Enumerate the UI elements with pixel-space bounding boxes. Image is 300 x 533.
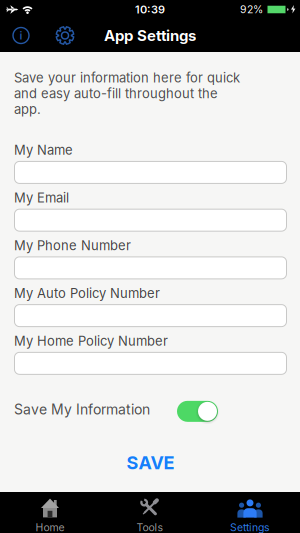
staticText: Home bbox=[35, 521, 64, 533]
staticText: 92% bbox=[240, 3, 263, 16]
textField[interactable] bbox=[20, 355, 287, 371]
textField[interactable] bbox=[20, 308, 287, 323]
staticText: i bbox=[19, 29, 22, 42]
staticText: Save My Information bbox=[14, 401, 150, 418]
staticText: My Home Policy Number bbox=[14, 333, 168, 349]
button[interactable]: Settings bbox=[200, 492, 300, 533]
staticText: My Auto Policy Number bbox=[14, 285, 160, 301]
staticText: My Email bbox=[14, 190, 69, 206]
staticText: Save your information here for quick and… bbox=[14, 70, 240, 117]
button[interactable]: Info bbox=[0, 27, 29, 43]
button[interactable]: Tools bbox=[100, 492, 200, 533]
button[interactable]: Settings bbox=[29, 25, 75, 45]
staticText: Tools bbox=[136, 521, 163, 533]
staticText: My Phone Number bbox=[14, 238, 131, 253]
staticText: App Settings bbox=[104, 26, 196, 44]
staticText: My Name bbox=[14, 142, 73, 158]
button[interactable]: SAVE bbox=[126, 452, 174, 474]
textField[interactable] bbox=[20, 260, 287, 276]
staticText: SAVE bbox=[126, 452, 174, 474]
textField[interactable] bbox=[20, 165, 287, 180]
staticText: 10:39 bbox=[135, 3, 165, 16]
button[interactable]: Home bbox=[0, 492, 100, 533]
staticText: Settings bbox=[230, 521, 270, 533]
button[interactable]: Save My Information bbox=[177, 401, 218, 422]
textField[interactable] bbox=[20, 212, 287, 228]
